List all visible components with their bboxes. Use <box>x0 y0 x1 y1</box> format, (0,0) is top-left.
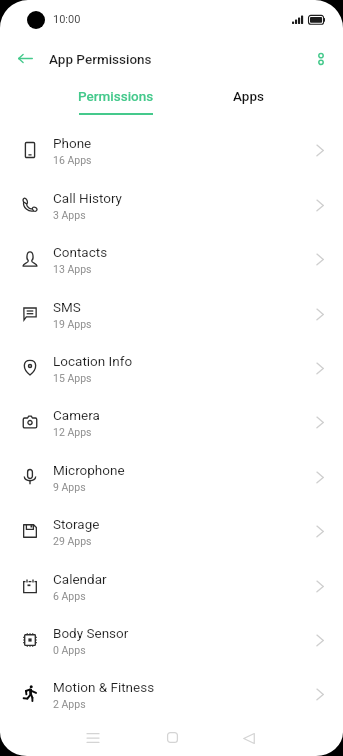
staticText: SMS <box>53 299 81 315</box>
staticText: 19 Apps <box>53 318 92 330</box>
staticText: Microphone <box>53 462 125 478</box>
staticText: 13 Apps <box>53 263 92 275</box>
button[interactable]: Recent apps <box>73 718 113 756</box>
staticText: 12 Apps <box>53 426 92 438</box>
staticText: Call History <box>53 190 122 206</box>
staticText: Apps <box>233 88 264 104</box>
button[interactable]: Location Info <box>0 345 343 399</box>
staticText: Body Sensor <box>53 625 129 641</box>
staticText: 3 Apps <box>53 209 86 221</box>
staticText: App Permissions <box>49 51 152 67</box>
staticText: 9 Apps <box>53 481 86 493</box>
staticText: Camera <box>53 407 100 423</box>
staticText: Storage <box>53 516 100 532</box>
button[interactable]: Back <box>9 42 41 74</box>
button[interactable]: Body Sensor <box>0 617 343 671</box>
staticText: 10:00 <box>53 13 81 26</box>
button[interactable]: Apps <box>193 84 303 118</box>
button[interactable]: Back <box>229 718 269 756</box>
button[interactable]: Calendar <box>0 563 343 617</box>
button[interactable]: Contacts <box>0 236 343 290</box>
button[interactable]: Camera <box>0 399 343 453</box>
staticText: Motion & Fitness <box>53 679 155 695</box>
button[interactable]: More options <box>305 43 337 75</box>
button[interactable]: SMS <box>0 291 343 345</box>
staticText: Location Info <box>53 353 133 369</box>
staticText: 15 Apps <box>53 372 92 384</box>
button[interactable]: Phone <box>0 127 343 181</box>
button[interactable]: Motion & Fitness <box>0 671 343 725</box>
staticText: 0 Apps <box>53 644 86 656</box>
staticText: 2 Apps <box>53 698 86 710</box>
staticText: Calendar <box>53 571 107 587</box>
staticText: Permissions <box>78 88 154 104</box>
button[interactable]: Microphone <box>0 454 343 508</box>
staticText: 16 Apps <box>53 154 92 166</box>
staticText: 6 Apps <box>53 590 86 602</box>
staticText: Contacts <box>53 244 108 260</box>
staticText: 29 Apps <box>53 535 92 547</box>
staticText: Phone <box>53 135 92 151</box>
button[interactable]: Storage <box>0 508 343 562</box>
button[interactable]: Home <box>152 717 192 756</box>
button[interactable]: Call History <box>0 182 343 236</box>
button[interactable]: Permissions <box>61 84 171 118</box>
